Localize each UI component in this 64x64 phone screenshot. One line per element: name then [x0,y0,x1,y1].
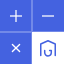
button[interactable]: Decrease [32,0,64,32]
button[interactable]: Increase [0,0,32,32]
button[interactable]: Close [0,32,32,64]
button[interactable]: Home [32,32,64,64]
